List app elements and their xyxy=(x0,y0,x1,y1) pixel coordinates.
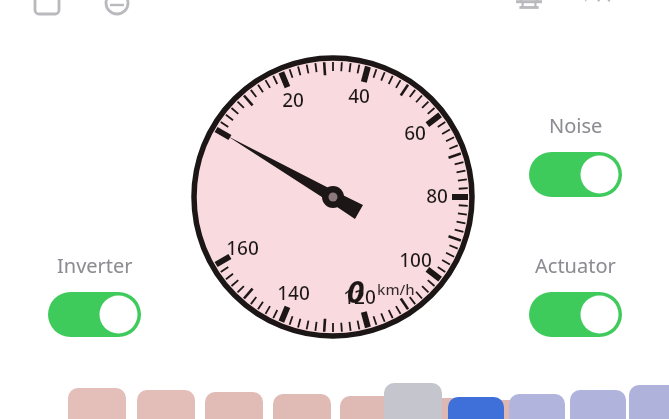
staticText: 0 xyxy=(347,270,365,306)
staticText: 40 xyxy=(348,83,370,109)
button[interactable]: Swatch 4 xyxy=(273,394,331,419)
button[interactable]: Swatch 7 xyxy=(470,400,524,419)
staticText: 60 xyxy=(404,120,426,146)
button[interactable]: Swatch 2 xyxy=(137,390,195,419)
staticText: 120 xyxy=(343,284,376,310)
button[interactable]: Swatch 3 xyxy=(205,392,263,419)
button[interactable]: Speedometer, 0 km/h xyxy=(191,55,475,339)
staticText: Inverter xyxy=(57,252,133,278)
button[interactable]: Swatch 10 xyxy=(509,394,565,419)
staticText: 80 xyxy=(426,183,448,209)
button[interactable]: Swatch 8 xyxy=(384,383,442,419)
staticText: 140 xyxy=(277,280,310,306)
button[interactable]: Noise switch, on xyxy=(529,152,622,197)
button[interactable]: Swatch 1 xyxy=(68,388,126,419)
button[interactable]: Swatch 11 xyxy=(570,390,626,419)
staticText: 20 xyxy=(282,87,304,113)
staticText: 100 xyxy=(399,247,432,273)
button[interactable]: Waveform xyxy=(584,0,616,19)
staticText: 160 xyxy=(226,235,259,261)
staticText: Noise xyxy=(549,112,603,138)
button[interactable]: Inverter switch, on xyxy=(48,292,141,337)
button[interactable]: Display xyxy=(31,0,63,19)
staticText: Actuator xyxy=(535,252,616,278)
button[interactable]: Swatch 5 xyxy=(340,396,398,419)
button[interactable]: Swatch 12 xyxy=(629,385,669,419)
button[interactable]: Swatch 9 xyxy=(448,397,504,419)
button[interactable]: Status xyxy=(101,0,133,19)
button[interactable]: Table xyxy=(513,0,545,19)
staticText: km/h xyxy=(377,279,415,299)
button[interactable]: Swatch 6 xyxy=(406,398,462,419)
button[interactable]: Actuator switch, on xyxy=(529,292,622,337)
